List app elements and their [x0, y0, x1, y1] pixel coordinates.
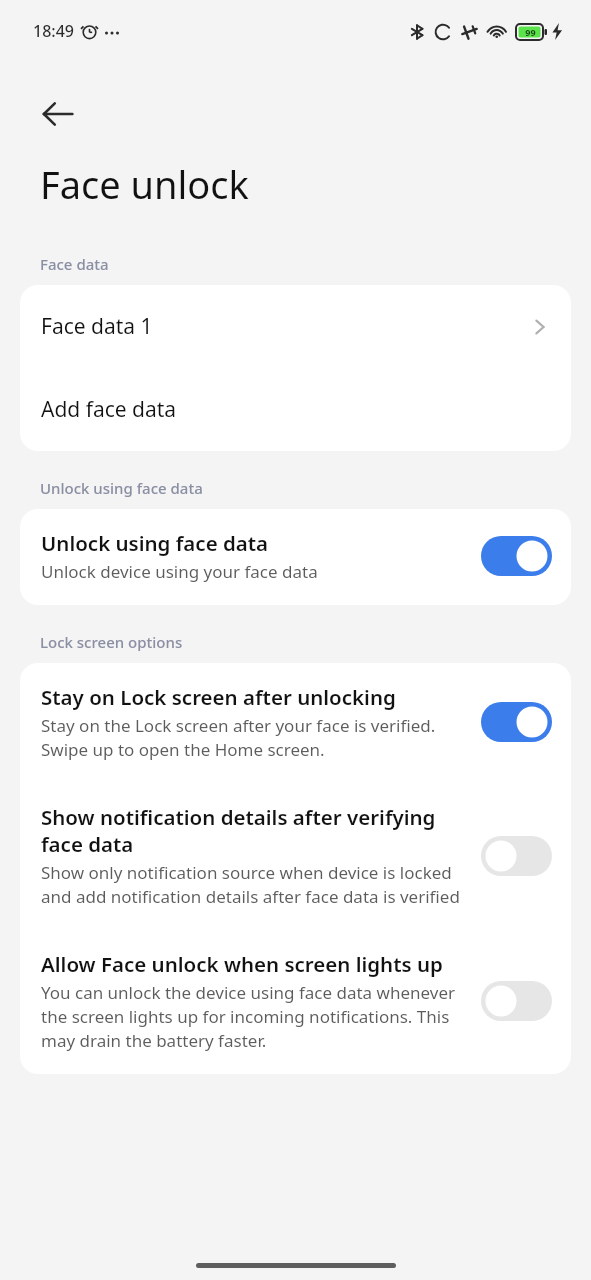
button[interactable]: On — [481, 536, 552, 576]
button[interactable]: Allow Face unlock when screen lights up — [20, 930, 571, 1074]
button[interactable]: Off — [481, 981, 552, 1021]
button[interactable]: On — [481, 702, 552, 742]
staticText: Unlock using face data — [40, 478, 203, 498]
button[interactable]: Unlock using face data — [20, 509, 571, 605]
button[interactable]: Back — [24, 80, 92, 148]
staticText: Face data — [40, 254, 109, 274]
button[interactable]: Add face data — [20, 368, 571, 451]
staticText: Unlock device using your face data — [41, 560, 318, 583]
button[interactable]: Off — [481, 836, 552, 876]
button[interactable]: Stay on Lock screen after unlocking — [20, 663, 571, 783]
staticText: Add face data — [41, 395, 550, 424]
staticText: Lock screen options — [40, 632, 183, 652]
staticText: Unlock using face data — [41, 529, 269, 557]
staticText: Stay on the Lock screen after your face … — [41, 714, 467, 761]
staticText: Show only notification source when devic… — [41, 861, 467, 908]
staticText: You can unlock the device using face dat… — [41, 981, 467, 1052]
staticText: Stay on Lock screen after unlocking — [41, 683, 396, 711]
staticText: Show notification details after verifyin… — [41, 803, 467, 858]
staticText: 99 — [525, 26, 536, 38]
staticText: 18:49 — [33, 20, 74, 42]
button[interactable]: Face data 1 — [20, 285, 571, 368]
staticText: Face unlock — [40, 158, 249, 210]
button[interactable]: Show notification details after verifyin… — [20, 783, 571, 930]
staticText: Face data 1 — [41, 312, 530, 341]
staticText: Allow Face unlock when screen lights up — [41, 950, 443, 978]
